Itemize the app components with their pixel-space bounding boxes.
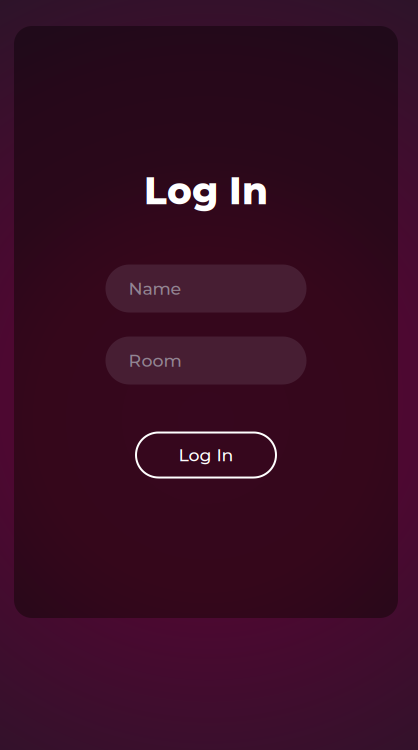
button[interactable]: Log In (136, 432, 276, 477)
staticText: Log In (178, 444, 233, 465)
button[interactable]: Room (105, 336, 306, 384)
staticText: Log In (144, 168, 268, 213)
staticText: Room (128, 350, 181, 371)
button[interactable]: Name (105, 264, 306, 312)
staticText: Name (128, 278, 181, 299)
